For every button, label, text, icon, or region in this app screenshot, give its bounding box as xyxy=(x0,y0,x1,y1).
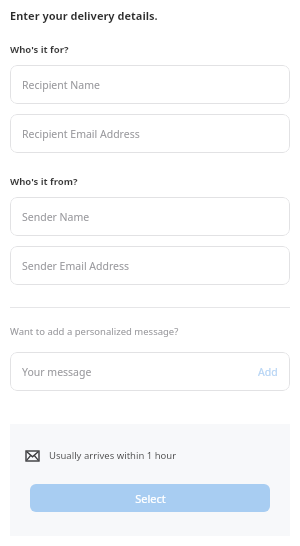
staticText: Usually arrives within 1 hour xyxy=(49,449,177,462)
staticText: Add xyxy=(258,365,278,379)
button[interactable]: Recipient Email Address xyxy=(10,114,290,153)
staticText: Want to add a personalized message? xyxy=(10,325,179,338)
button[interactable]: Sender Email Address xyxy=(10,246,290,285)
button[interactable]: Recipient Name xyxy=(10,65,290,104)
staticText: Sender Name xyxy=(22,210,90,224)
staticText: Sender Email Address xyxy=(22,259,130,273)
staticText: Enter your delivery details. xyxy=(10,8,158,23)
staticText: Recipient Email Address xyxy=(22,127,140,141)
staticText: Who's it from? xyxy=(10,175,78,188)
button[interactable]: Select xyxy=(30,484,270,512)
staticText: Recipient Name xyxy=(22,78,100,92)
button[interactable]: Your message xyxy=(10,352,290,391)
button[interactable]: Sender Name xyxy=(10,197,290,236)
staticText: Who's it for? xyxy=(10,43,69,56)
staticText: Your message xyxy=(22,365,92,379)
staticText: Select xyxy=(135,491,166,506)
